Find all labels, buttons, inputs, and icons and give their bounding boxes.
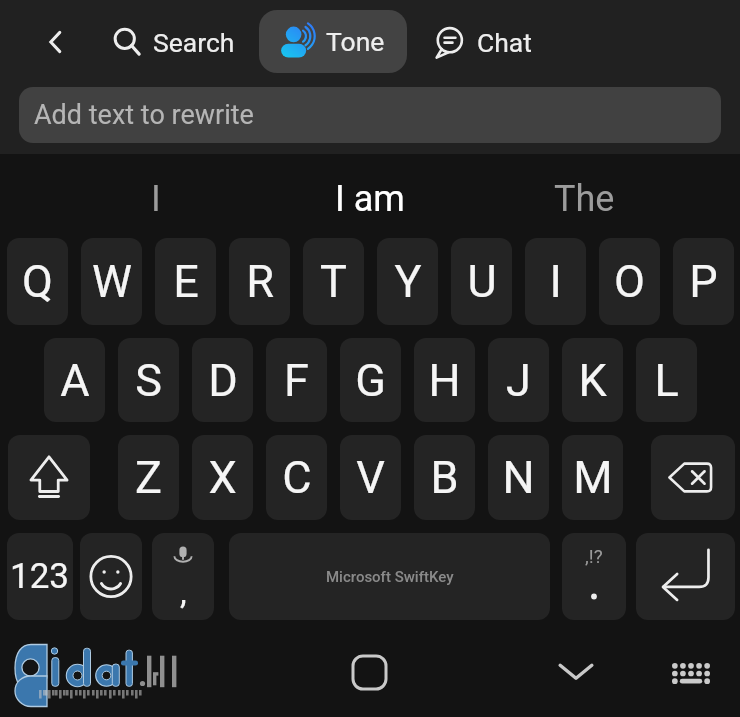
button[interactable]: Period and punctuation <box>562 533 626 620</box>
staticText: Add text to rewrite <box>34 99 254 131</box>
staticText: J <box>506 354 531 407</box>
button[interactable]: 123 <box>7 533 73 620</box>
button[interactable]: P <box>673 238 734 325</box>
button[interactable]: Tone <box>259 10 407 73</box>
button[interactable]: I am <box>263 157 477 241</box>
button[interactable]: H <box>414 338 475 422</box>
staticText: Q <box>22 255 53 308</box>
staticText: 123 <box>10 556 70 597</box>
button[interactable]: I <box>525 238 586 325</box>
staticText: K <box>578 354 607 407</box>
staticText: X <box>208 451 237 504</box>
staticText: B <box>430 451 459 504</box>
button[interactable]: S <box>118 338 179 422</box>
button[interactable]: Microsoft SwiftKey <box>229 533 550 620</box>
button[interactable]: Enter <box>636 533 735 620</box>
staticText: Y <box>394 255 422 308</box>
button[interactable]: C <box>266 435 327 520</box>
button[interactable]: M <box>562 435 623 520</box>
staticText: S <box>135 354 162 407</box>
button[interactable]: A <box>44 338 105 422</box>
button[interactable]: Home <box>338 641 400 703</box>
staticText: Search <box>153 27 235 58</box>
button[interactable]: Emoji <box>80 533 142 620</box>
button[interactable]: The <box>477 157 691 241</box>
button[interactable]: D <box>192 338 253 422</box>
button[interactable]: R <box>229 238 290 325</box>
button[interactable]: Q <box>7 238 68 325</box>
staticText: T <box>320 255 347 308</box>
staticText: M <box>573 451 613 504</box>
staticText: V <box>356 451 385 504</box>
button[interactable]: Back <box>33 20 77 64</box>
staticText: U <box>467 255 497 308</box>
button[interactable]: B <box>414 435 475 520</box>
staticText: R <box>246 255 274 308</box>
staticText: , <box>180 572 187 612</box>
button[interactable]: N <box>488 435 549 520</box>
button[interactable]: X <box>192 435 253 520</box>
staticText: N <box>502 451 535 504</box>
staticText: H <box>428 354 461 407</box>
staticText: Chat <box>477 27 532 58</box>
button[interactable]: F <box>266 338 327 422</box>
button[interactable]: Y <box>377 238 438 325</box>
staticText: F <box>284 354 309 407</box>
button[interactable]: J <box>488 338 549 422</box>
button[interactable]: K <box>562 338 623 422</box>
button[interactable]: Add text to rewrite <box>19 87 721 143</box>
staticText: I <box>549 255 562 308</box>
button[interactable]: I <box>49 157 263 241</box>
button[interactable]: Chat <box>424 14 540 70</box>
button[interactable]: Shift <box>8 435 90 520</box>
staticText: Tone <box>326 26 385 57</box>
button[interactable]: Backspace <box>651 435 735 520</box>
staticText: G <box>355 354 386 407</box>
staticText: I am <box>335 178 405 220</box>
staticText: ,!? <box>585 545 603 567</box>
staticText: D <box>208 354 238 407</box>
button[interactable]: Search <box>103 18 243 66</box>
button[interactable]: V <box>340 435 401 520</box>
button[interactable]: T <box>303 238 364 325</box>
staticText: P <box>689 255 718 308</box>
staticText: O <box>614 255 645 308</box>
staticText: I <box>151 178 161 220</box>
button[interactable]: O <box>599 238 660 325</box>
button[interactable]: G <box>340 338 401 422</box>
button[interactable]: Switch keyboard <box>660 642 722 704</box>
button[interactable]: W <box>81 238 142 325</box>
button[interactable]: Hide keyboard <box>545 640 607 702</box>
staticText: W <box>92 255 132 308</box>
button[interactable]: Z <box>118 435 179 520</box>
button[interactable]: L <box>636 338 697 422</box>
staticText: E <box>173 255 199 308</box>
staticText: The <box>554 178 615 220</box>
button[interactable]: U <box>451 238 512 325</box>
staticText: L <box>654 354 679 407</box>
button[interactable]: E <box>155 238 216 325</box>
staticText: Microsoft SwiftKey <box>326 568 454 586</box>
staticText: A <box>60 354 90 407</box>
button[interactable]: Comma and voice typing <box>152 533 214 620</box>
staticText: C <box>282 451 312 504</box>
staticText: Z <box>135 451 162 504</box>
